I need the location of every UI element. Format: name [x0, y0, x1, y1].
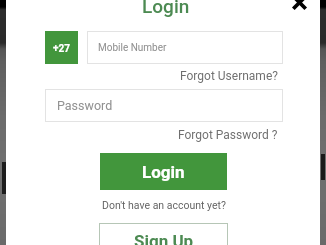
button[interactable]: Login [100, 153, 227, 190]
staticText: Sign Up [134, 231, 194, 245]
staticText: Forgot Password ? [178, 128, 278, 142]
staticText: Password [57, 98, 113, 113]
button[interactable]: Mobile Number [87, 31, 283, 64]
staticText: Don't have an account yet? [102, 199, 226, 211]
staticText: Forgot Username? [180, 69, 278, 83]
button[interactable]: +27 [45, 31, 78, 64]
button[interactable]: Forgot Username? [180, 69, 278, 83]
staticText: +27 [53, 43, 70, 55]
button[interactable]: Forgot Password ? [178, 128, 278, 142]
button[interactable]: Password [45, 89, 283, 122]
button[interactable]: Close [283, 0, 315, 18]
staticText: Login [142, 0, 190, 17]
staticText: Mobile Number [98, 42, 167, 54]
staticText: Login [142, 162, 185, 182]
button[interactable]: Sign Up [99, 223, 228, 245]
